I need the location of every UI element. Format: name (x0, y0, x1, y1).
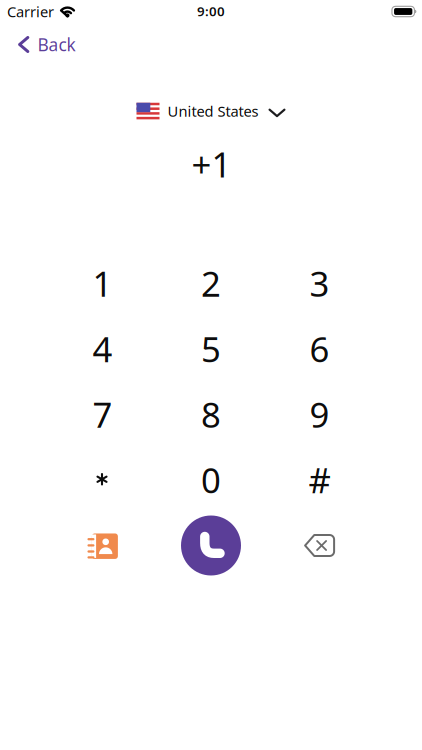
staticText: 3 (310, 260, 330, 306)
button[interactable]: Delete (265, 512, 374, 578)
button[interactable]: Call (157, 512, 265, 578)
staticText: # (309, 457, 331, 503)
button[interactable]: Back (0, 33, 76, 56)
staticText: Back (38, 33, 76, 56)
staticText: 5 (201, 326, 221, 372)
button[interactable]: 5 (157, 316, 265, 381)
staticText: 8 (201, 391, 221, 437)
staticText: 1 (92, 260, 112, 306)
staticText: Carrier (7, 2, 54, 21)
button[interactable]: 8 (157, 381, 265, 447)
button[interactable]: 4 (48, 316, 157, 381)
button[interactable]: 0 (157, 447, 265, 512)
staticText: +1 (191, 141, 231, 187)
staticText: 9:00 (197, 2, 225, 20)
button[interactable]: 1 (48, 250, 157, 316)
button[interactable]: # (265, 447, 374, 512)
button[interactable]: Contacts (48, 512, 157, 578)
button[interactable]: United States (136, 101, 285, 121)
button[interactable]: 3 (265, 250, 374, 316)
staticText: 0 (201, 457, 221, 503)
button[interactable] (48, 447, 157, 512)
button[interactable]: 7 (48, 381, 157, 447)
button[interactable]: 6 (265, 316, 374, 381)
staticText: 4 (92, 326, 112, 372)
button[interactable]: 2 (157, 250, 265, 316)
button[interactable]: 9 (265, 381, 374, 447)
staticText: United States (167, 101, 258, 121)
staticText: 2 (201, 260, 221, 306)
staticText: 7 (92, 391, 112, 437)
staticText: 9 (310, 391, 330, 437)
staticText: 6 (310, 326, 330, 372)
